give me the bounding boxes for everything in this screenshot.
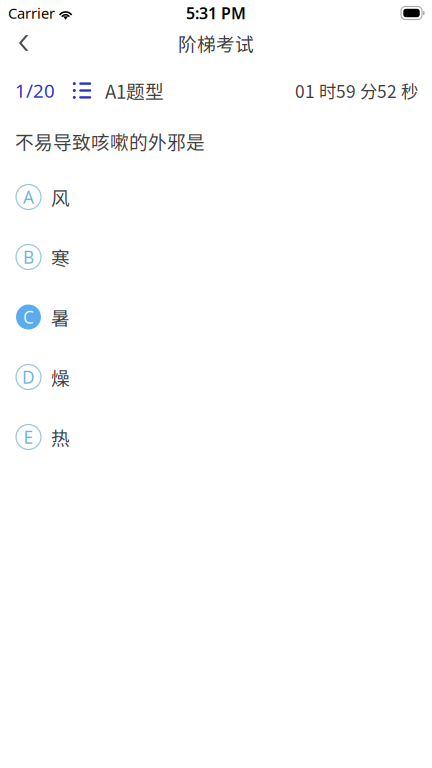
button[interactable]: D: [0, 347, 432, 407]
staticText: 暑: [51, 303, 70, 330]
staticText: Carrier: [8, 3, 55, 23]
staticText: E: [23, 425, 33, 448]
staticText: 燥: [51, 363, 70, 390]
staticText: 01 时59 分52 秒: [295, 78, 418, 103]
staticText: A1题型: [105, 77, 164, 104]
staticText: A: [23, 185, 34, 208]
staticText: C: [23, 305, 34, 328]
button[interactable]: 1/20: [0, 78, 91, 103]
staticText: 1/20: [15, 78, 55, 103]
staticText: D: [22, 365, 35, 388]
staticText: B: [23, 245, 34, 268]
staticText: 不易导致咳嗽的外邪是: [15, 127, 205, 154]
staticText: 阶梯考试: [178, 29, 254, 56]
button[interactable]: C: [0, 287, 432, 347]
button[interactable]: A: [0, 167, 432, 227]
staticText: 5:31 PM: [186, 2, 246, 24]
button[interactable]: Back: [0, 21, 44, 65]
button[interactable]: B: [0, 227, 432, 287]
staticText: 热: [51, 423, 70, 450]
staticText: 寒: [51, 243, 70, 270]
button[interactable]: E: [0, 407, 432, 467]
staticText: 风: [51, 183, 70, 210]
